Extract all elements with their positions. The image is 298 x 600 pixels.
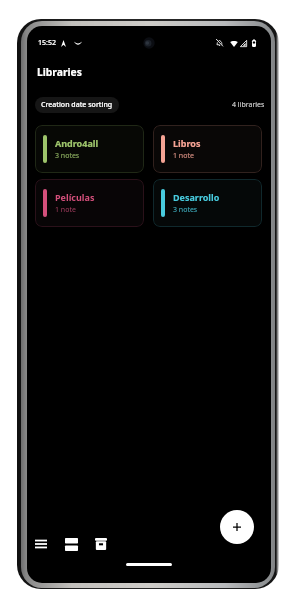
button[interactable]: Card view bbox=[56, 529, 86, 559]
staticText: Andro4all bbox=[55, 137, 99, 149]
button[interactable]: Libros bbox=[153, 125, 262, 173]
button[interactable]: Archive bbox=[86, 529, 116, 559]
button[interactable]: Add library bbox=[220, 510, 254, 544]
button[interactable]: Desarrollo bbox=[153, 179, 262, 227]
staticText: Libraries bbox=[37, 65, 82, 79]
staticText: 1 note bbox=[173, 151, 194, 161]
button[interactable]: List view bbox=[27, 529, 56, 559]
staticText: 3 notes bbox=[173, 205, 198, 215]
staticText: Creation date sorting bbox=[41, 100, 113, 110]
staticText: 4 libraries bbox=[232, 100, 265, 110]
staticText: Libros bbox=[173, 137, 201, 149]
staticText: Desarrollo bbox=[173, 191, 220, 203]
button[interactable]: Creation date sorting bbox=[35, 97, 119, 113]
staticText: Películas bbox=[55, 191, 95, 203]
staticText: 1 note bbox=[55, 205, 76, 215]
button[interactable]: Películas bbox=[35, 179, 144, 227]
button[interactable]: Andro4all bbox=[35, 125, 144, 173]
staticText: 3 notes bbox=[55, 151, 80, 161]
staticText: 15:52 bbox=[38, 38, 56, 48]
